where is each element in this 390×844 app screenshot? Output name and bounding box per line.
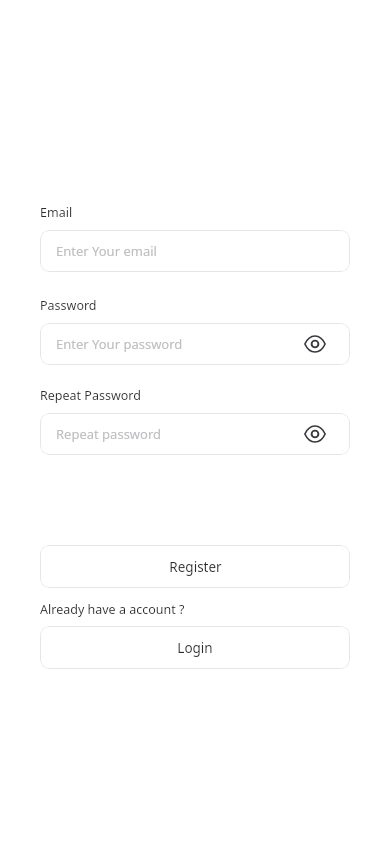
- button[interactable]: Enter Your email: [40, 230, 350, 272]
- staticText: Register: [169, 558, 222, 576]
- staticText: Enter Your email: [56, 242, 157, 260]
- button[interactable]: Enter Your password: [40, 323, 350, 365]
- staticText: Login: [177, 639, 213, 657]
- button[interactable]: Show password: [303, 332, 327, 356]
- button[interactable]: Login: [40, 626, 350, 669]
- staticText: Repeat Password: [40, 387, 141, 404]
- button[interactable]: Show repeat password: [303, 422, 327, 446]
- staticText: Email: [40, 204, 73, 221]
- staticText: Password: [40, 297, 97, 314]
- button[interactable]: Repeat password: [40, 413, 350, 455]
- staticText: Enter Your password: [56, 335, 183, 353]
- button[interactable]: Register: [40, 545, 350, 588]
- staticText: Already have a account ?: [40, 601, 185, 618]
- staticText: Repeat password: [56, 425, 162, 443]
